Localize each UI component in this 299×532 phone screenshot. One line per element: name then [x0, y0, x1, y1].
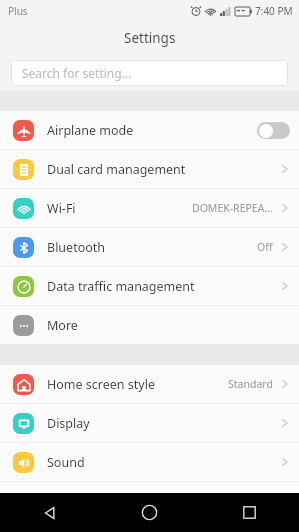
staticText: 7:40 PM: [255, 4, 293, 18]
staticText: Bluetooth: [47, 239, 257, 256]
staticText: Standard: [228, 377, 273, 391]
button[interactable]: Home screen style: [0, 365, 299, 403]
staticText: Off: [257, 240, 273, 254]
button[interactable]: Data traffic management: [0, 267, 299, 305]
staticText: More: [47, 317, 280, 334]
staticText: DOMEK-REPEA...: [192, 201, 273, 215]
staticText: Airplane mode: [47, 122, 257, 139]
button[interactable]: Airplane mode: [0, 111, 299, 149]
button[interactable]: Wi-Fi: [0, 189, 299, 227]
button[interactable]: Home: [99, 493, 199, 532]
staticText: Dual card management: [47, 161, 280, 178]
button[interactable]: Display: [0, 404, 299, 442]
button[interactable]: Airplane mode toggle: [257, 122, 290, 139]
staticText: Settings: [124, 29, 176, 47]
button[interactable]: Dual card management: [0, 150, 299, 188]
staticText: Display: [47, 415, 280, 432]
button[interactable]: Recent apps: [199, 493, 299, 532]
button[interactable]: Bluetooth: [0, 228, 299, 266]
staticText: Wi-Fi: [47, 200, 192, 217]
button[interactable]: Back: [0, 493, 99, 532]
button[interactable]: More: [0, 306, 299, 344]
staticText: Search for setting...: [22, 65, 132, 81]
staticText: Sound: [47, 454, 280, 471]
button[interactable]: Sound: [0, 443, 299, 481]
staticText: Plus: [8, 4, 28, 18]
staticText: Home screen style: [47, 376, 228, 393]
staticText: Data traffic management: [47, 278, 280, 295]
button[interactable]: Search for setting...: [11, 60, 288, 86]
